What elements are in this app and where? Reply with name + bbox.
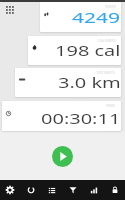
button[interactable]: Apps bbox=[6, 6, 15, 15]
staticText: TIME bbox=[106, 103, 116, 107]
button[interactable]: Start workout bbox=[52, 146, 73, 167]
button[interactable]: STEPS bbox=[40, 2, 121, 32]
button[interactable]: Settings bbox=[0, 180, 20, 200]
button[interactable]: TIME bbox=[2, 101, 121, 131]
button[interactable]: Filter bbox=[62, 180, 83, 200]
button[interactable]: Refresh bbox=[20, 180, 41, 200]
button[interactable]: DISTANCE bbox=[15, 68, 121, 97]
staticText: CALORIES bbox=[98, 38, 116, 42]
button[interactable]: History bbox=[41, 180, 62, 200]
staticText: STEPS bbox=[105, 4, 116, 8]
staticText: 4249 bbox=[72, 7, 121, 28]
staticText: 00:30:11 bbox=[41, 109, 121, 128]
button[interactable]: Statistics bbox=[83, 180, 104, 200]
button[interactable]: Lock bbox=[104, 180, 125, 200]
staticText: 198 cal bbox=[55, 41, 121, 60]
staticText: 3.0 km bbox=[58, 73, 121, 92]
button[interactable]: CALORIES bbox=[28, 36, 121, 65]
staticText: DISTANCE bbox=[97, 70, 116, 74]
